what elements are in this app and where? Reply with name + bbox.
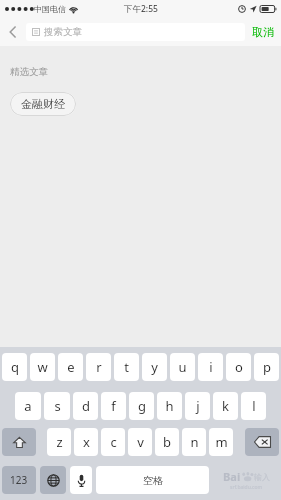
button[interactable]: j <box>185 392 210 420</box>
staticText: o <box>235 358 243 376</box>
button[interactable]: Backspace <box>245 428 279 456</box>
staticText: 123 <box>10 473 28 487</box>
button[interactable]: v <box>128 428 152 456</box>
button[interactable]: p <box>254 353 279 381</box>
button[interactable]: 123 <box>2 466 36 494</box>
staticText: v <box>137 433 144 451</box>
button[interactable]: y <box>142 353 167 381</box>
staticText: b <box>163 433 171 451</box>
button[interactable]: 搜索文章 <box>26 23 245 41</box>
staticText: k <box>222 397 229 415</box>
button[interactable]: m <box>209 428 233 456</box>
button[interactable]: x <box>74 428 98 456</box>
staticText: y <box>151 358 158 376</box>
button[interactable]: Voice input <box>70 466 92 494</box>
staticText: n <box>190 433 199 451</box>
button[interactable]: z <box>47 428 71 456</box>
button[interactable]: o <box>226 353 251 381</box>
staticText: 输入 <box>254 472 270 482</box>
button[interactable]: 空格 <box>96 466 209 494</box>
button[interactable]: t <box>114 353 139 381</box>
button[interactable]: Back <box>0 18 26 46</box>
staticText: i <box>209 358 213 376</box>
staticText: l <box>252 397 256 415</box>
button[interactable]: Shift <box>2 428 36 456</box>
button[interactable]: i <box>198 353 223 381</box>
staticText: r <box>96 358 102 376</box>
staticText: x <box>83 433 90 451</box>
button[interactable]: 金融财经 <box>10 92 76 116</box>
button[interactable]: b <box>155 428 179 456</box>
button[interactable]: e <box>58 353 83 381</box>
staticText: w <box>37 358 48 376</box>
button[interactable]: f <box>101 392 126 420</box>
staticText: c <box>110 433 117 451</box>
staticText: srf.baidu.com <box>230 484 263 491</box>
button[interactable]: a <box>15 392 41 420</box>
staticText: d <box>82 397 90 415</box>
staticText: f <box>111 397 116 415</box>
button[interactable]: w <box>30 353 55 381</box>
staticText: 搜索文章 <box>44 26 82 38</box>
button[interactable]: Bai <box>213 466 279 494</box>
staticText: h <box>165 397 174 415</box>
button[interactable]: k <box>213 392 238 420</box>
staticText: m <box>215 433 228 451</box>
staticText: 中国电信 <box>34 4 66 14</box>
staticText: q <box>11 358 19 376</box>
staticText: 空格 <box>143 474 163 487</box>
staticText: p <box>263 358 271 376</box>
staticText: 下午2:55 <box>124 3 158 15</box>
staticText: a <box>24 397 32 415</box>
button[interactable]: u <box>170 353 195 381</box>
staticText: j <box>196 397 200 415</box>
staticText: g <box>138 397 146 415</box>
button[interactable]: h <box>157 392 182 420</box>
button[interactable]: s <box>44 392 70 420</box>
staticText: e <box>67 358 75 376</box>
button[interactable]: n <box>182 428 206 456</box>
staticText: 精选文章 <box>10 66 48 78</box>
staticText: Bai <box>223 469 241 484</box>
staticText: 取消 <box>252 25 274 39</box>
button[interactable]: 取消 <box>245 18 281 46</box>
staticText: u <box>178 358 187 376</box>
button[interactable]: l <box>241 392 266 420</box>
button[interactable]: r <box>86 353 111 381</box>
staticText: t <box>124 358 129 376</box>
button[interactable]: Switch language <box>40 466 66 494</box>
button[interactable]: c <box>101 428 125 456</box>
staticText: 金融财经 <box>21 97 65 111</box>
button[interactable]: g <box>129 392 154 420</box>
staticText: z <box>56 433 63 451</box>
button[interactable]: d <box>73 392 98 420</box>
staticText: s <box>54 397 61 415</box>
button[interactable]: q <box>2 353 27 381</box>
